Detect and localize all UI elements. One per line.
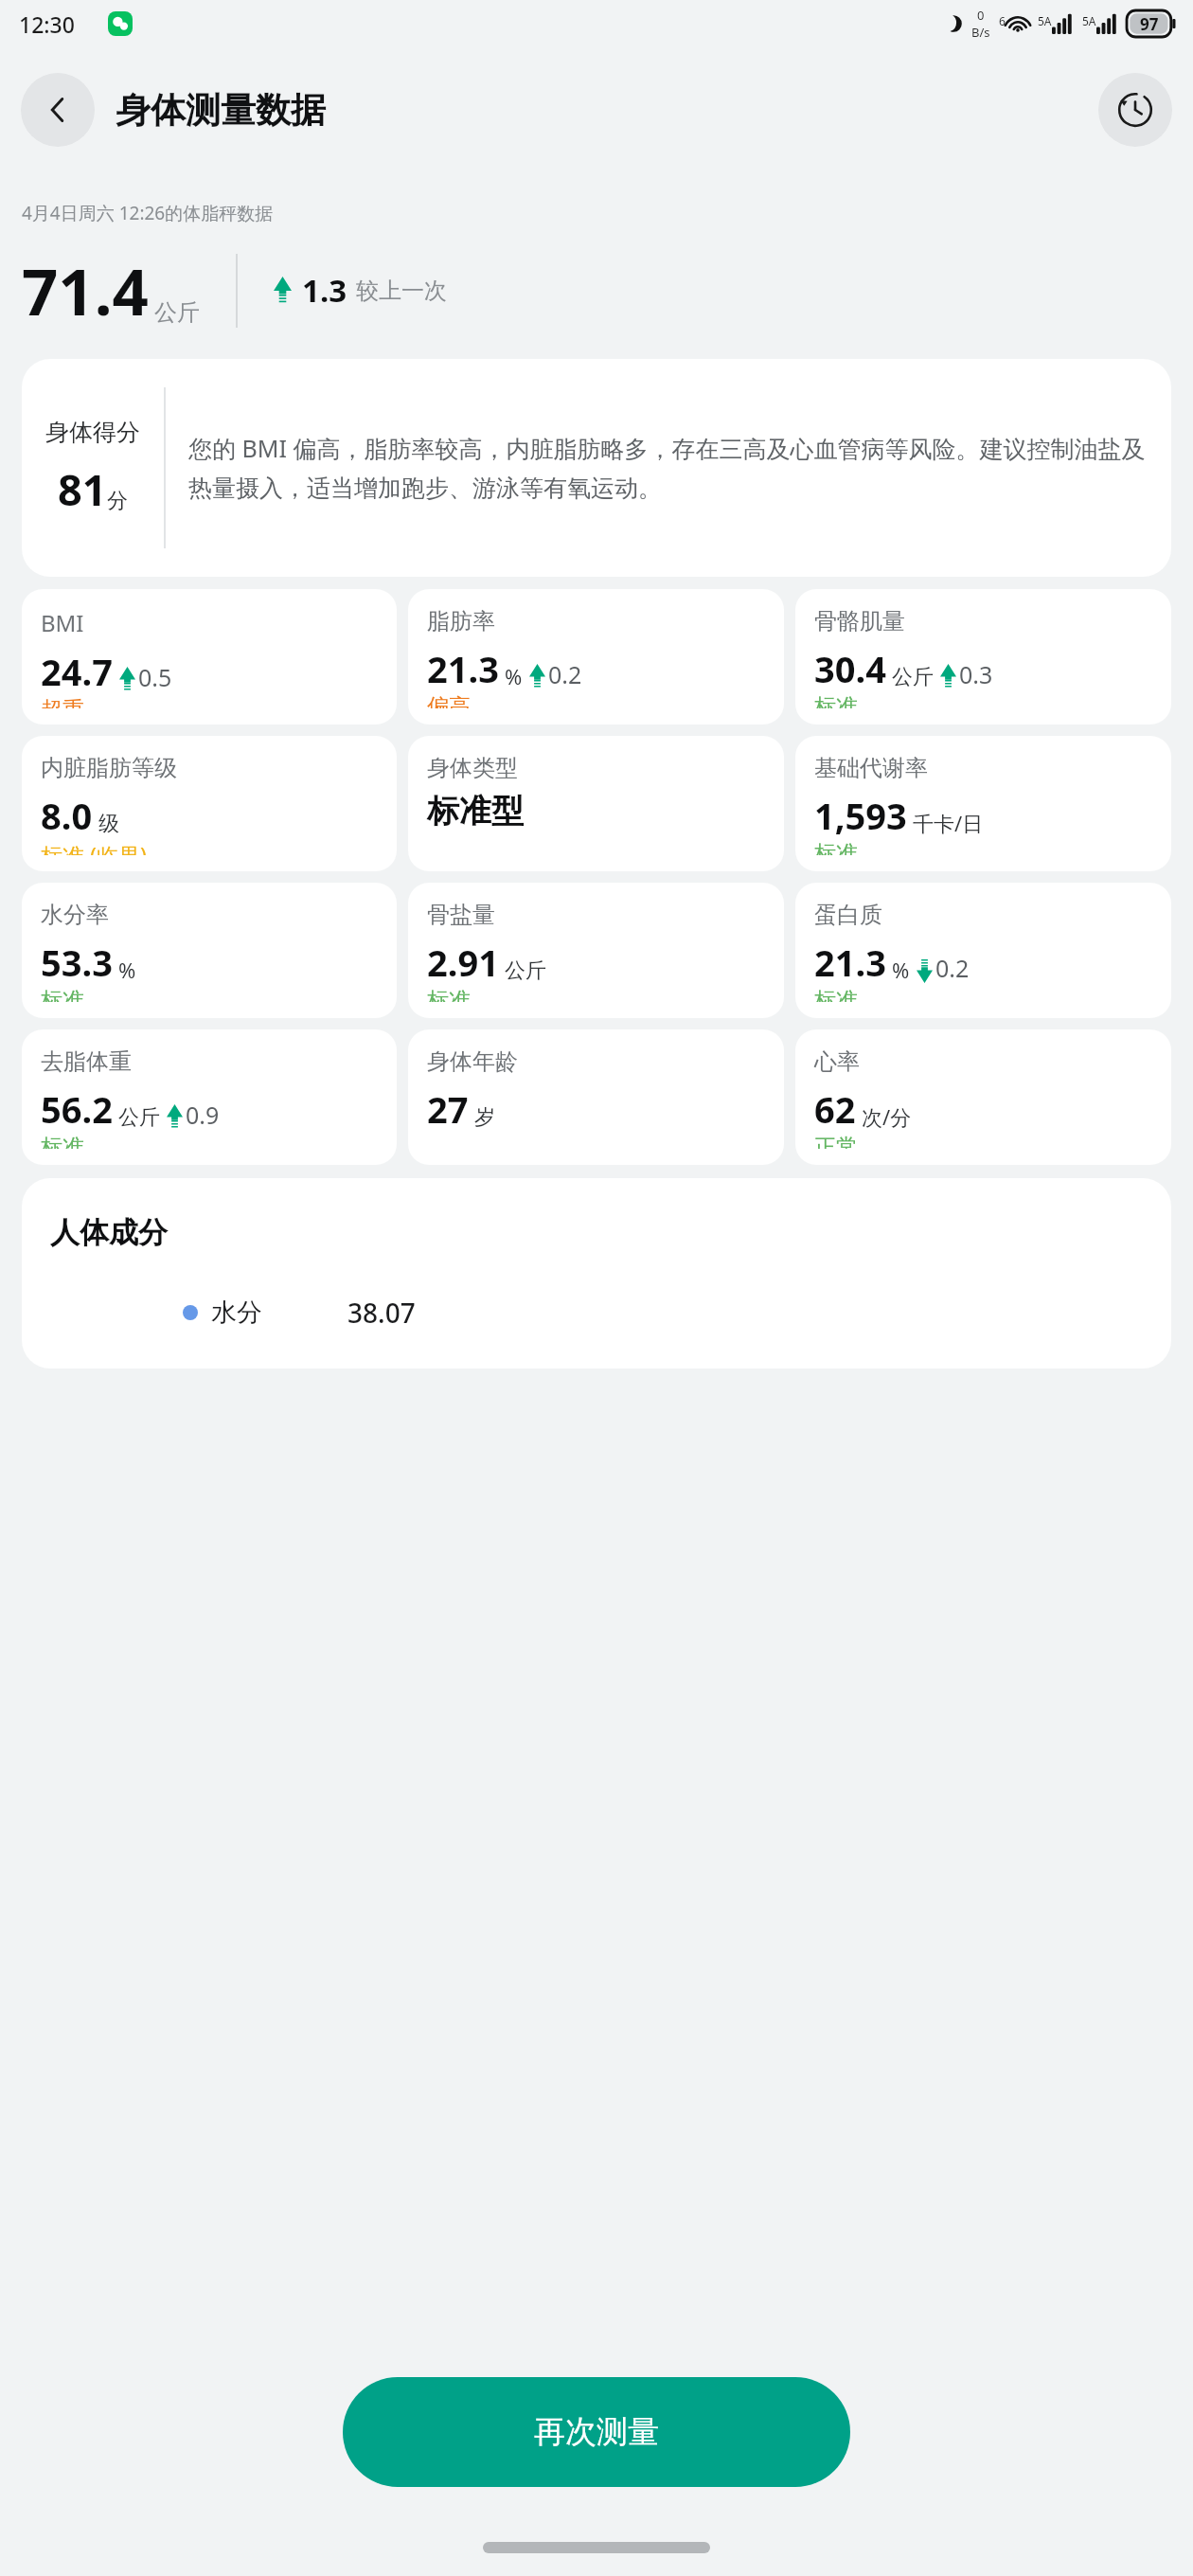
staticText: BMI xyxy=(41,607,84,638)
staticText: 分 xyxy=(107,488,128,514)
staticText: 62 xyxy=(814,1084,856,1134)
button[interactable]: 水分率 xyxy=(22,883,397,1018)
staticText: 1.3 xyxy=(302,269,347,312)
button[interactable]: 再次测量 xyxy=(343,2377,850,2487)
staticText: 您的 BMI 偏高，脂肪率较高，内脏脂肪略多，存在三高及心血管病等风险。建议控制… xyxy=(188,432,1152,504)
staticText: 超重 xyxy=(41,696,84,708)
staticText: 71.4 xyxy=(22,247,149,333)
staticText: 97 xyxy=(1140,13,1159,35)
staticText: 去脂体重 xyxy=(41,1047,132,1076)
staticText: 30.4 xyxy=(814,644,886,693)
button[interactable]: BMI xyxy=(22,589,397,724)
staticText: 53.3 xyxy=(41,938,113,987)
staticText: 标准 xyxy=(41,987,84,1002)
staticText: 0 xyxy=(977,7,985,24)
staticText: B/s xyxy=(971,24,990,41)
staticText: 公斤 xyxy=(505,957,546,984)
button[interactable]: Back xyxy=(21,73,95,147)
staticText: 标准 xyxy=(814,840,858,855)
staticText: 标准型 xyxy=(427,791,524,832)
button[interactable]: 心率 xyxy=(795,1029,1171,1165)
staticText: 公斤 xyxy=(892,664,934,690)
staticText: 0.5 xyxy=(138,661,172,693)
staticText: 12:30 xyxy=(19,9,75,39)
staticText: % xyxy=(505,662,523,690)
staticText: 级 xyxy=(98,811,119,837)
staticText: 基础代谢率 xyxy=(814,754,928,782)
staticText: 身体测量数据 xyxy=(116,88,326,133)
staticText: 偏高 xyxy=(427,693,471,708)
staticText: 千卡/日 xyxy=(913,809,984,837)
staticText: 0.3 xyxy=(959,658,993,690)
button[interactable]: 骨盐量 xyxy=(408,883,784,1018)
staticText: 0.9 xyxy=(186,1099,220,1131)
staticText: 21.3 xyxy=(427,644,499,693)
staticText: 骨盐量 xyxy=(427,901,495,929)
staticText: 标准 xyxy=(814,987,858,1002)
staticText: 4月4日周六 12:26的体脂秤数据 xyxy=(22,201,274,225)
staticText: 24.7 xyxy=(41,647,113,696)
staticText: 81 xyxy=(58,460,107,518)
staticText: 27 xyxy=(427,1084,469,1134)
staticText: 身体类型 xyxy=(427,754,518,782)
staticText: 人体成分 xyxy=(50,1214,168,1251)
staticText: 5A xyxy=(1082,13,1096,28)
staticText: 心率 xyxy=(814,1047,860,1076)
staticText: 标准 xyxy=(814,693,858,708)
staticText: 0.2 xyxy=(935,952,970,984)
staticText: 次/分 xyxy=(862,1102,912,1131)
staticText: 38.07 xyxy=(347,1295,416,1331)
button[interactable]: 蛋白质 xyxy=(795,883,1171,1018)
staticText: 56.2 xyxy=(41,1084,113,1134)
staticText: 公斤 xyxy=(118,1104,160,1131)
staticText: 水分 xyxy=(211,1297,262,1329)
button[interactable]: 内脏脂肪等级 xyxy=(22,736,397,871)
button[interactable]: 人体成分 xyxy=(22,1178,1171,1368)
staticText: 21.3 xyxy=(814,938,886,987)
staticText: 标准 xyxy=(427,987,471,1002)
staticText: 岁 xyxy=(474,1104,495,1131)
staticText: 正常 xyxy=(814,1134,858,1149)
button[interactable]: 身体类型 xyxy=(408,736,784,871)
staticText: % xyxy=(892,956,910,984)
staticText: 标准 xyxy=(41,1134,84,1149)
staticText: 标准 (临界) xyxy=(41,840,147,855)
staticText: 水分率 xyxy=(41,901,109,929)
staticText: 5A xyxy=(1038,13,1052,28)
staticText: 身体得分 xyxy=(45,418,140,447)
staticText: 6 xyxy=(999,13,1006,28)
button[interactable]: History xyxy=(1098,73,1172,147)
staticText: 骨骼肌量 xyxy=(814,607,905,635)
staticText: 1,593 xyxy=(814,791,907,840)
button[interactable]: 基础代谢率 xyxy=(795,736,1171,871)
staticText: 身体年龄 xyxy=(427,1047,518,1076)
staticText: 脂肪率 xyxy=(427,607,495,635)
button[interactable]: 骨骼肌量 xyxy=(795,589,1171,724)
staticText: 公斤 xyxy=(154,298,200,327)
staticText: 2.91 xyxy=(427,938,499,987)
staticText: % xyxy=(118,956,136,984)
staticText: 蛋白质 xyxy=(814,901,882,929)
button[interactable]: 身体得分 xyxy=(22,359,1171,577)
staticText: 内脏脂肪等级 xyxy=(41,754,177,782)
button[interactable]: 身体年龄 xyxy=(408,1029,784,1165)
staticText: 再次测量 xyxy=(534,2412,659,2452)
button[interactable]: 脂肪率 xyxy=(408,589,784,724)
button[interactable]: 去脂体重 xyxy=(22,1029,397,1165)
staticText: 8.0 xyxy=(41,791,93,840)
staticText: 0.2 xyxy=(548,658,582,690)
staticText: 较上一次 xyxy=(356,277,447,305)
